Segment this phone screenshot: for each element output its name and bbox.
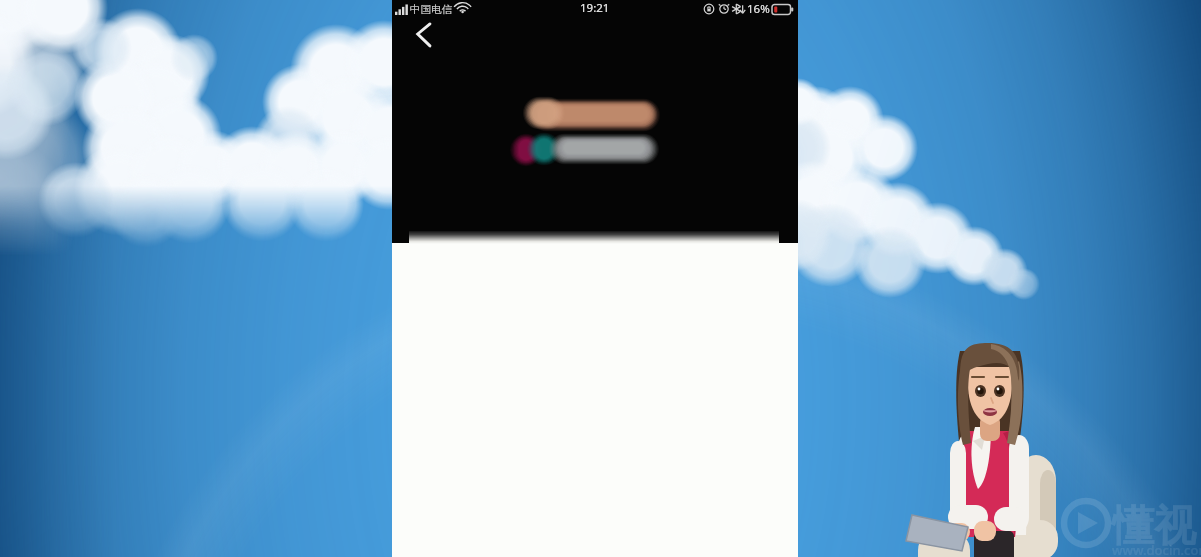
- button[interactable]: Open shared link: [510, 134, 700, 166]
- staticText: 16%: [747, 1, 770, 17]
- staticText: 中国电信: [410, 3, 452, 16]
- staticText: 懂视: [1112, 500, 1196, 553]
- button[interactable]: Back: [408, 16, 444, 52]
- staticText: www.docin.com: [1112, 541, 1201, 557]
- staticText: 19:21: [580, 0, 610, 16]
